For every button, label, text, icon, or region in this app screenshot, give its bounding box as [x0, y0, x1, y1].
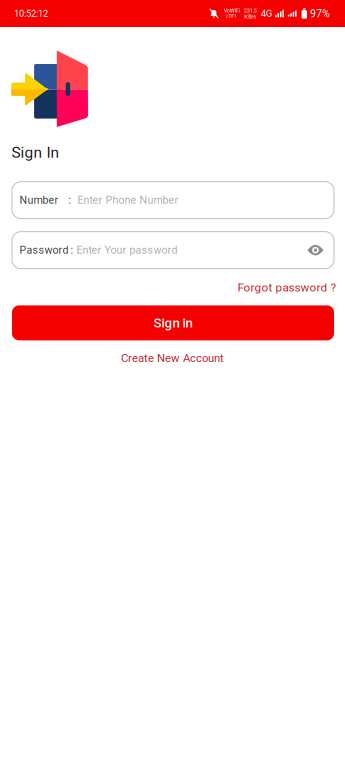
staticText: 4G [261, 8, 273, 19]
staticText: Sign In [11, 143, 59, 162]
staticText: KB/s [244, 13, 256, 20]
button[interactable]: Forgot password ? [237, 281, 336, 294]
staticText: Enter Phone Number [77, 194, 178, 206]
staticText: VoWiFi [224, 7, 240, 14]
button[interactable]: Show password [307, 244, 324, 256]
staticText: Password [19, 244, 68, 256]
staticText: Sign in [153, 315, 192, 331]
button[interactable]: Sign in [12, 305, 334, 340]
staticText: LTE1 [226, 13, 237, 20]
staticText: Forgot password ? [237, 281, 336, 294]
staticText: : [70, 244, 73, 256]
staticText: 231.5 [244, 7, 257, 14]
button[interactable]: Create New Account [121, 351, 224, 365]
staticText: 10:52:12 [14, 8, 48, 19]
staticText: Create New Account [121, 351, 224, 365]
staticText: : [68, 194, 71, 206]
staticText: Number [19, 194, 58, 206]
staticText: Enter Your password [76, 244, 177, 256]
staticText: 97% [310, 7, 330, 20]
